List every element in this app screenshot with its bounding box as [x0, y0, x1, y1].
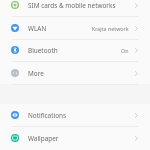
button[interactable]: WLAN: [0, 16, 150, 39]
staticText: Krajta network: [92, 25, 129, 32]
staticText: Wallpaper: [28, 134, 59, 143]
button[interactable]: Notifications: [0, 104, 150, 126]
staticText: Bluetooth: [28, 46, 58, 55]
button[interactable]: SIM cards & mobile networks: [0, 0, 150, 16]
staticText: On: [121, 47, 129, 54]
button[interactable]: Wallpaper: [0, 126, 150, 150]
staticText: More: [28, 69, 44, 78]
button[interactable]: Bluetooth: [0, 39, 150, 61]
staticText: SIM cards & mobile networks: [28, 1, 116, 10]
button[interactable]: More: [0, 61, 150, 84]
staticText: WLAN: [28, 24, 47, 33]
staticText: Notifications: [28, 111, 67, 120]
